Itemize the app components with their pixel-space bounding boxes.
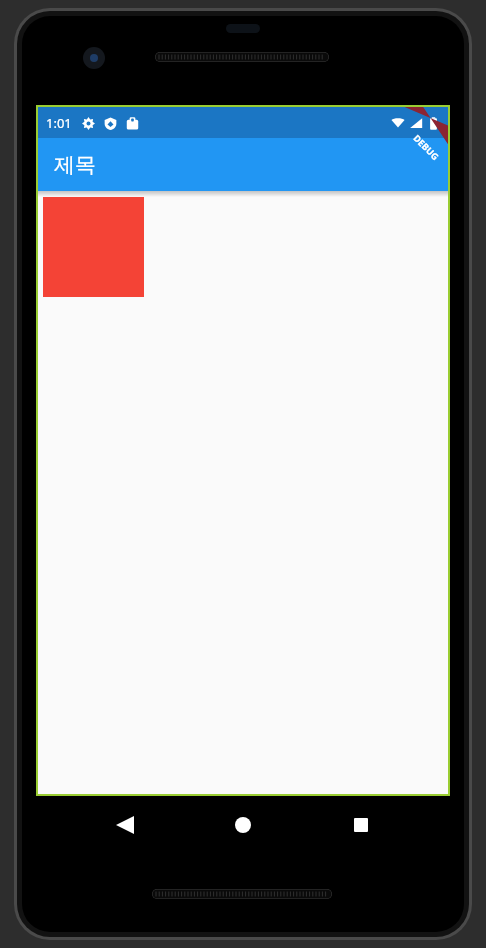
staticText: 제목 — [54, 152, 96, 178]
button[interactable]: Home — [214, 796, 272, 854]
button[interactable]: Recent apps — [332, 796, 390, 854]
button[interactable]: 제목 — [38, 138, 448, 191]
staticText: 1:01 — [46, 114, 72, 132]
staticText: DEBUG — [411, 132, 442, 162]
button[interactable]: Back — [96, 796, 154, 854]
